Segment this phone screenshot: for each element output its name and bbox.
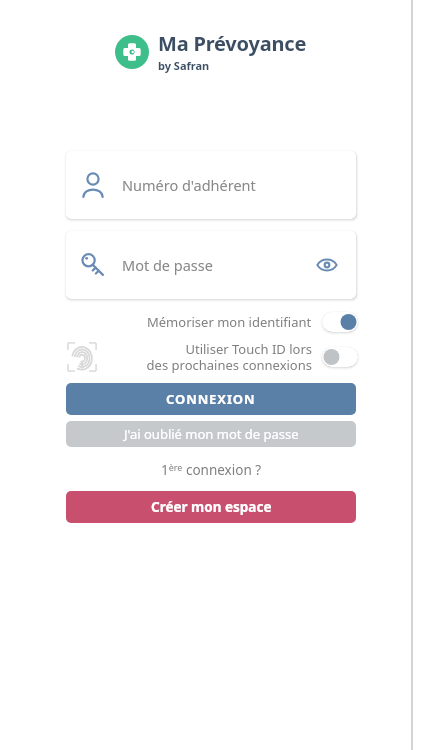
staticText: J'ai oublié mon mot de passe [124,425,299,443]
button[interactable]: Mémoriser mon identifiant [66,312,358,332]
button[interactable]: Créer mon espace [66,491,356,523]
button[interactable]: J'ai oublié mon mot de passe [66,421,356,447]
staticText: Mémoriser mon identifiant [147,313,312,331]
staticText: Créer mon espace [151,498,272,516]
staticText: Ma Prévoyance [158,30,307,57]
staticText: 1ère connexion ? [161,461,262,479]
button[interactable]: Numéro d'adhérent [66,151,356,219]
staticText: Mot de passe [122,255,312,275]
staticText: CONNEXION [166,390,256,408]
staticText: Utiliser Touch ID lors des prochaines co… [146,340,312,373]
button[interactable]: CONNEXION [66,383,356,415]
staticText: Numéro d'adhérent [122,175,256,195]
button[interactable]: Afficher le mot de passe [312,250,342,280]
button[interactable]: Mot de passe [66,231,356,299]
button[interactable]: Utiliser Touch ID lors des prochaines co… [66,340,358,373]
staticText: by Safran [158,58,210,73]
